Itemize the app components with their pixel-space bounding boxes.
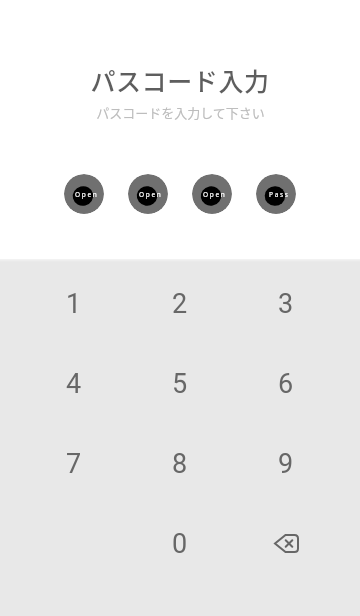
button[interactable]: 0 <box>127 504 233 584</box>
button[interactable]: 7 <box>21 424 127 504</box>
button[interactable]: Open <box>128 174 168 214</box>
button[interactable]: 6 <box>233 344 339 424</box>
button[interactable]: Backspace <box>233 504 339 584</box>
staticText: 3 <box>278 288 294 320</box>
button[interactable]: 4 <box>21 344 127 424</box>
button[interactable]: Pass <box>256 174 296 214</box>
staticText: 2 <box>172 288 188 320</box>
staticText: パスコード入力 <box>90 62 270 98</box>
button[interactable]: 8 <box>127 424 233 504</box>
staticText: 5 <box>172 368 188 400</box>
button[interactable]: 2 <box>127 264 233 344</box>
button[interactable]: 3 <box>233 264 339 344</box>
button[interactable]: 9 <box>233 424 339 504</box>
button[interactable]: 5 <box>127 344 233 424</box>
staticText: 7 <box>66 448 82 480</box>
staticText: 1 <box>66 288 82 320</box>
other: Backspace <box>274 534 299 553</box>
staticText: 8 <box>172 448 188 480</box>
staticText: パスコードを入力して下さい <box>96 103 265 122</box>
button[interactable]: Open <box>64 174 104 214</box>
staticText: Open <box>203 190 227 199</box>
staticText: Open <box>139 190 163 199</box>
staticText: 4 <box>66 368 82 400</box>
button[interactable]: 1 <box>21 264 127 344</box>
staticText: Open <box>75 190 99 199</box>
button[interactable]: Open <box>192 174 232 214</box>
staticText: Pass <box>269 190 290 199</box>
staticText: 9 <box>278 448 294 480</box>
staticText: 0 <box>172 528 188 560</box>
staticText: 6 <box>278 368 294 400</box>
